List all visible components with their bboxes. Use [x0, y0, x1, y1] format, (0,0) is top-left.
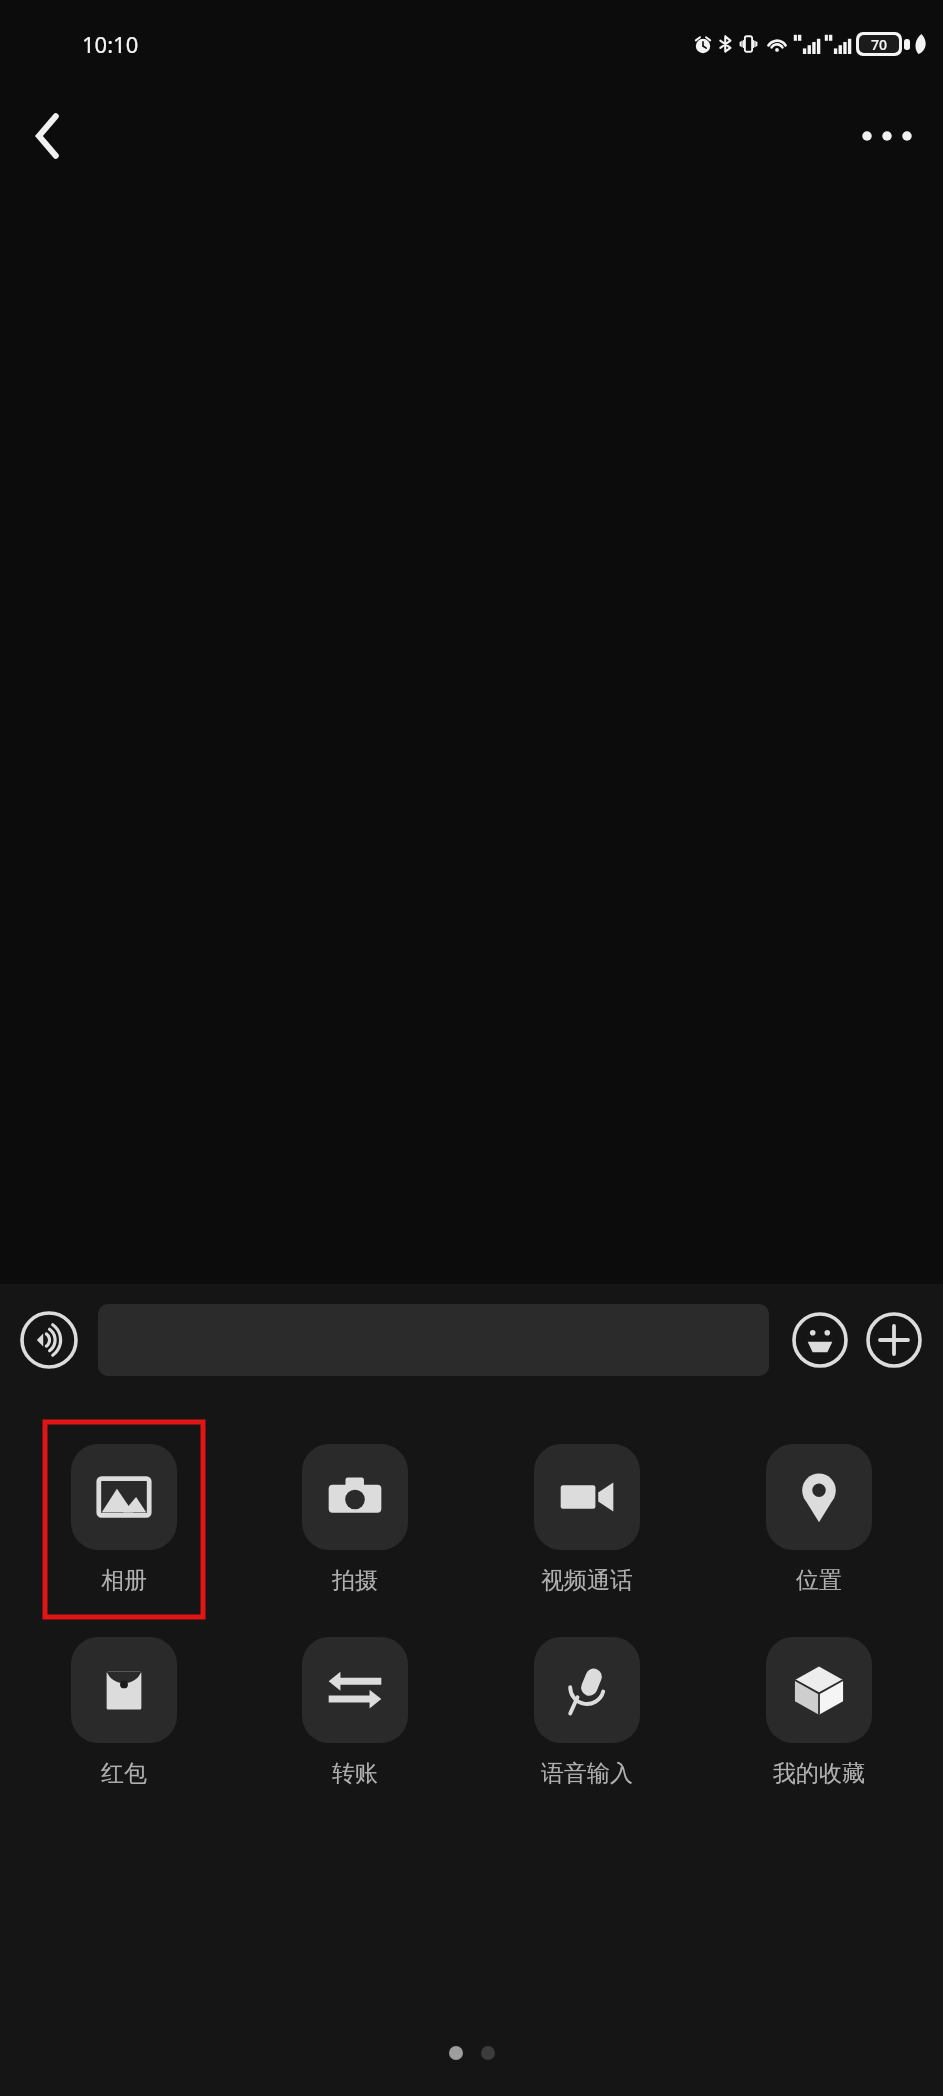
- button[interactable]: 转账: [302, 1629, 408, 1796]
- button[interactable]: 拍摄: [302, 1436, 408, 1603]
- button[interactable]: 位置: [766, 1436, 872, 1603]
- button[interactable]: 我的收藏: [766, 1629, 872, 1796]
- staticText: 转账: [332, 1759, 378, 1788]
- staticText: 拍摄: [332, 1566, 378, 1595]
- button[interactable]: 语音输入: [534, 1629, 640, 1796]
- staticText: 我的收藏: [773, 1759, 865, 1788]
- button[interactable]: Voice message: [16, 1307, 82, 1373]
- staticText: 视频通话: [541, 1566, 633, 1595]
- button[interactable]: 视频通话: [534, 1436, 640, 1603]
- button[interactable]: Add attachment: [861, 1307, 927, 1373]
- staticText: 10:10: [82, 29, 139, 59]
- button[interactable]: Emoji: [787, 1307, 853, 1373]
- button[interactable]: 相册: [71, 1436, 177, 1603]
- staticText: 位置: [796, 1566, 842, 1595]
- staticText: 语音输入: [541, 1759, 633, 1788]
- button[interactable]: More options: [847, 96, 927, 176]
- button[interactable]: Back: [10, 98, 86, 174]
- staticText: 红包: [101, 1759, 147, 1788]
- staticText: 相册: [101, 1566, 147, 1595]
- button[interactable]: 红包: [71, 1629, 177, 1796]
- staticText: 70: [871, 35, 888, 53]
